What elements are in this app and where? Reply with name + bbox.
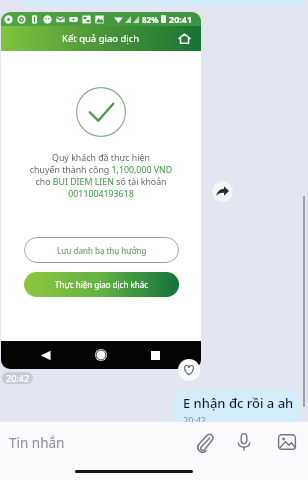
button[interactable]: Home: [178, 32, 191, 45]
staticText: 20:42: [183, 414, 207, 426]
staticText: Lưu danh bạ thụ hưởng: [57, 245, 147, 256]
staticText: 20:41: [169, 13, 193, 25]
button[interactable]: Tin nhắn: [0, 426, 180, 460]
staticText: Tin nhắn: [9, 434, 65, 452]
button[interactable]: Send image: [277, 432, 297, 452]
button[interactable]: Voice message: [234, 432, 254, 452]
staticText: E nhận đc rồi a ah: [183, 394, 294, 412]
staticText: Quý khách đã thực hiện chuyển thành công…: [11, 152, 191, 200]
button[interactable]: Forward: [212, 181, 233, 202]
button[interactable]: Lưu danh bạ thụ hưởng: [24, 237, 179, 263]
staticText: 82%: [142, 14, 159, 25]
button[interactable]: React with heart: [178, 359, 200, 381]
staticText: 20:42: [6, 372, 30, 384]
staticText: Thực hiện giao dịch khác: [55, 279, 149, 290]
button[interactable]: Attach file: [195, 432, 214, 452]
staticText: Kết quả giao dịch: [62, 32, 140, 45]
button[interactable]: Thực hiện giao dịch khác: [24, 272, 179, 297]
